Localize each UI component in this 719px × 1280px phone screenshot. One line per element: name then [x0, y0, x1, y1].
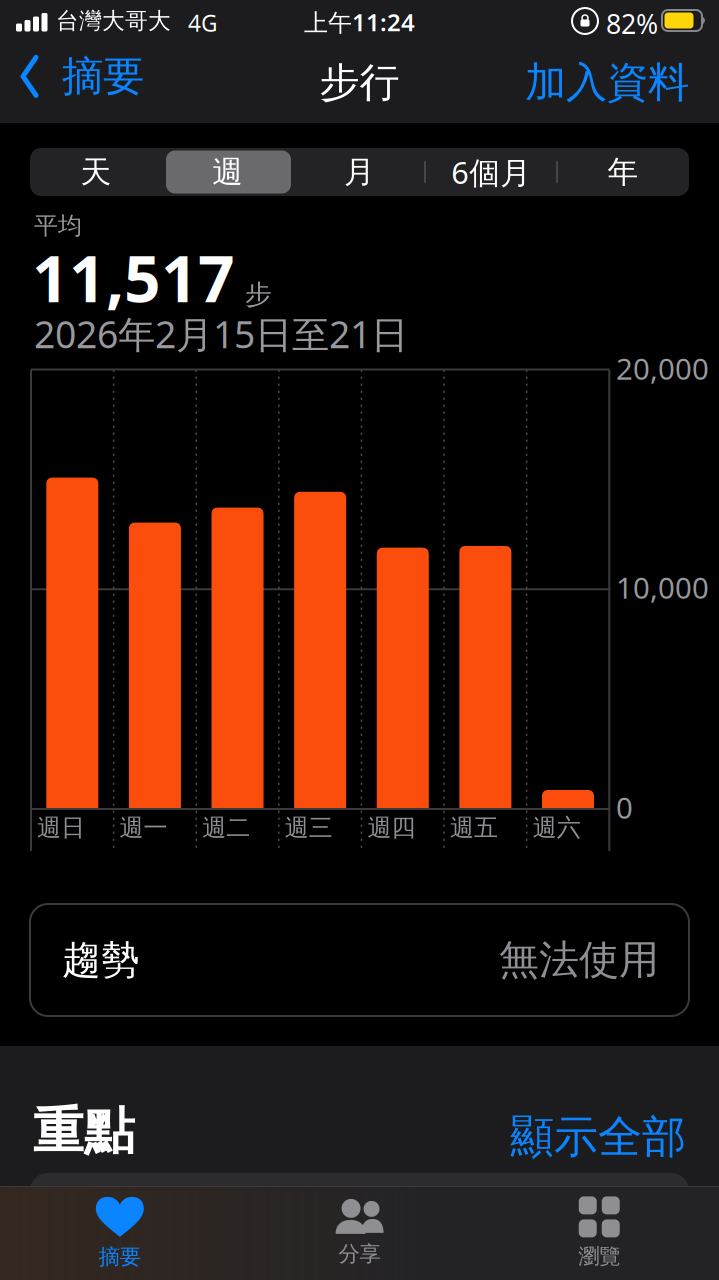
staticText: 上午11:24: [304, 6, 415, 38]
button[interactable]: 趨勢: [30, 904, 689, 1016]
staticText: 4G: [188, 8, 218, 38]
staticText: 重點: [33, 1100, 135, 1162]
staticText: 天: [80, 153, 111, 191]
staticText: 週日: [37, 813, 85, 842]
staticText: 分享: [338, 1241, 380, 1267]
staticText: 0: [616, 788, 633, 827]
button[interactable]: 月: [294, 148, 425, 196]
staticText: 週一: [120, 813, 168, 842]
staticText: 無法使用: [499, 935, 659, 984]
staticText: 摘要: [99, 1244, 141, 1270]
staticText: 瀏覽: [578, 1243, 620, 1270]
staticText: 年: [608, 153, 639, 191]
button[interactable]: 6個月: [425, 148, 557, 196]
button[interactable]: 天: [30, 148, 162, 196]
staticText: 2026年2月15日至21日: [34, 309, 408, 359]
button[interactable]: 摘要: [0, 1186, 240, 1280]
staticText: 週四: [367, 813, 415, 842]
staticText: 82%: [606, 6, 658, 41]
button[interactable]: 摘要: [0, 44, 144, 102]
staticText: 步行: [319, 58, 399, 107]
staticText: 月: [344, 153, 375, 191]
button[interactable]: 加入資料: [525, 57, 689, 108]
staticText: 台灣大哥大: [56, 7, 171, 35]
staticText: 20,000: [616, 349, 709, 388]
button[interactable]: 週: [162, 148, 294, 196]
staticText: 10,000: [616, 568, 709, 607]
staticText: 平均: [34, 211, 82, 240]
staticText: 6個月: [451, 152, 531, 192]
button[interactable]: 分享: [240, 1186, 479, 1280]
staticText: 週六: [533, 813, 581, 842]
staticText: 趨勢: [62, 936, 140, 984]
button[interactable]: 顯示全部: [510, 1110, 686, 1164]
staticText: 摘要: [62, 51, 144, 102]
staticText: 加入資料: [525, 57, 689, 108]
button[interactable]: 年: [557, 148, 689, 196]
staticText: 週: [212, 153, 243, 191]
staticText: 週五: [450, 813, 498, 842]
staticText: 顯示全部: [510, 1110, 686, 1164]
staticText: 步: [245, 278, 272, 311]
staticText: 週三: [285, 813, 333, 842]
button[interactable]: 瀏覽: [479, 1186, 719, 1280]
staticText: 11,517: [32, 235, 235, 320]
staticText: 週二: [202, 813, 250, 842]
